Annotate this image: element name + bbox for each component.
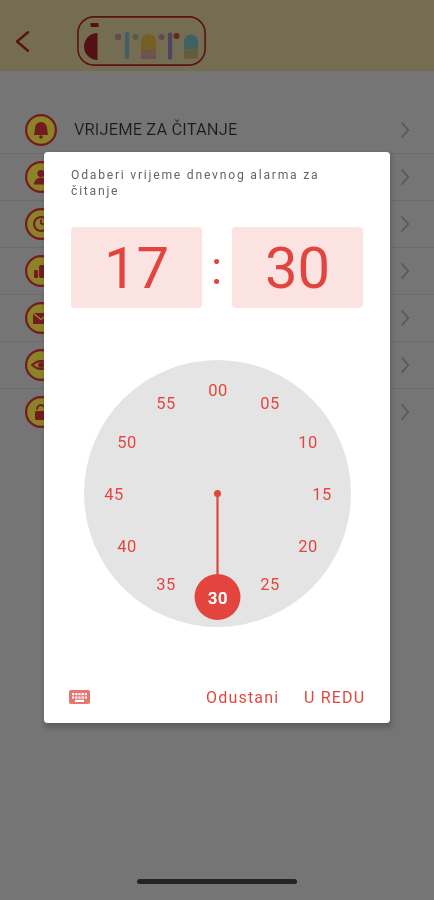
staticText: 25: [260, 575, 280, 594]
button[interactable]: Switch to text input: [64, 682, 94, 712]
staticText: U REDU: [304, 688, 366, 707]
button[interactable]: U REDU: [294, 678, 376, 717]
staticText: 00: [208, 381, 228, 400]
button[interactable]: [77, 16, 206, 66]
staticText: 10: [298, 433, 318, 452]
staticText: VRIJEME ZA ČITANJE: [74, 120, 238, 139]
button[interactable]: Back: [0, 19, 44, 63]
button[interactable]: Odustani: [196, 678, 290, 717]
button[interactable]: [0, 388, 434, 435]
staticText: 50: [117, 433, 137, 452]
button[interactable]: [0, 247, 434, 294]
staticText: Odustani: [206, 688, 280, 707]
button[interactable]: 17: [71, 227, 202, 308]
button[interactable]: [0, 153, 434, 200]
staticText: 20: [298, 537, 318, 556]
staticText: 05: [260, 394, 280, 413]
button[interactable]: [0, 341, 434, 388]
staticText: 55: [156, 394, 176, 413]
button[interactable]: 30: [232, 227, 363, 308]
staticText: 17: [104, 234, 170, 302]
staticText: 45: [104, 485, 124, 504]
staticText: 15: [312, 485, 332, 504]
staticText: Odaberi vrijeme dnevnog alarma za čitanj…: [71, 168, 327, 198]
staticText: 35: [156, 575, 176, 594]
button[interactable]: [0, 294, 434, 341]
staticText: 30: [265, 234, 331, 302]
staticText: 30: [208, 589, 228, 608]
button[interactable]: [0, 200, 434, 247]
button[interactable]: VRIJEME ZA ČITANJE: [0, 106, 434, 153]
staticText: :: [211, 241, 223, 295]
staticText: 40: [117, 537, 137, 556]
